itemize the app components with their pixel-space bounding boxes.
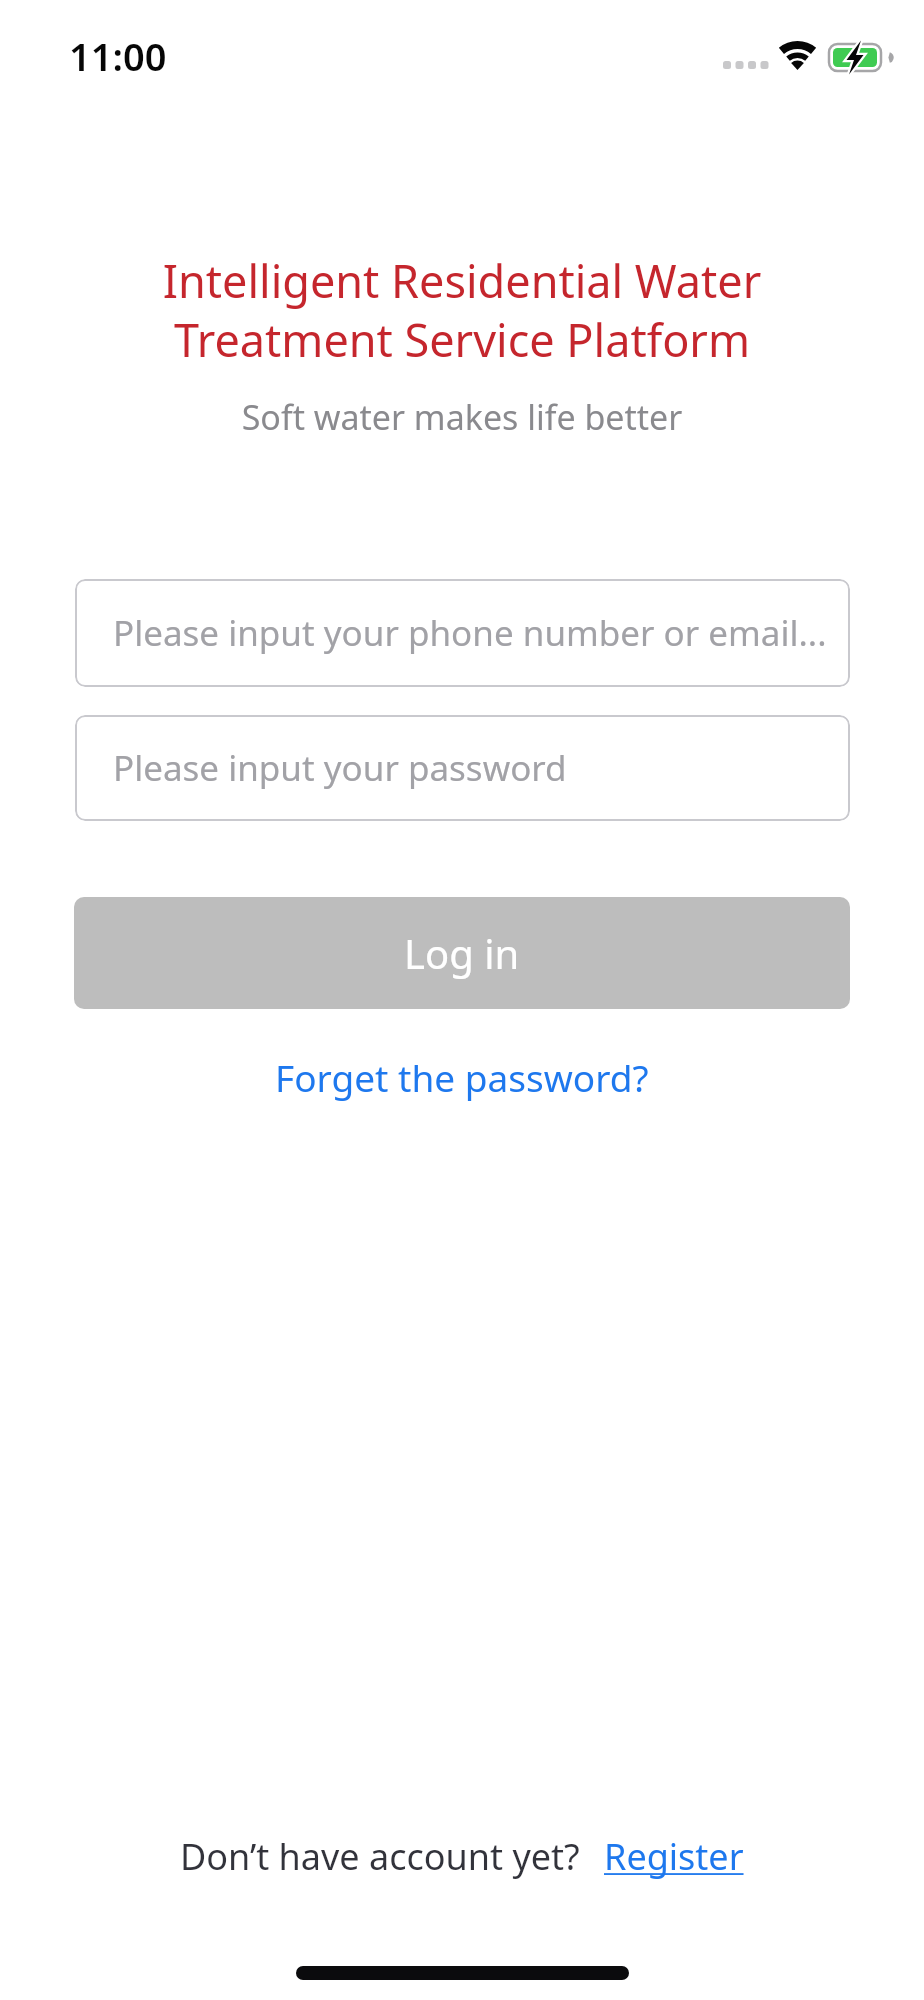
staticText: Don’t have account yet?: [180, 1832, 580, 1881]
staticText: Log in: [404, 926, 520, 980]
button[interactable]: Forget the password?: [275, 1052, 649, 1102]
staticText: Intelligent Residential Water Treatment …: [0, 250, 924, 370]
staticText: Please input your phone number or email.…: [113, 609, 827, 657]
staticText: Soft water makes life better: [0, 394, 924, 440]
button[interactable]: Please input your phone number or email.…: [75, 579, 850, 687]
staticText: Please input your password: [113, 744, 567, 792]
button[interactable]: Log in: [74, 897, 850, 1009]
staticText: 11:00: [69, 30, 167, 82]
button[interactable]: Please input your password: [75, 715, 850, 821]
button[interactable]: Register: [604, 1832, 744, 1881]
